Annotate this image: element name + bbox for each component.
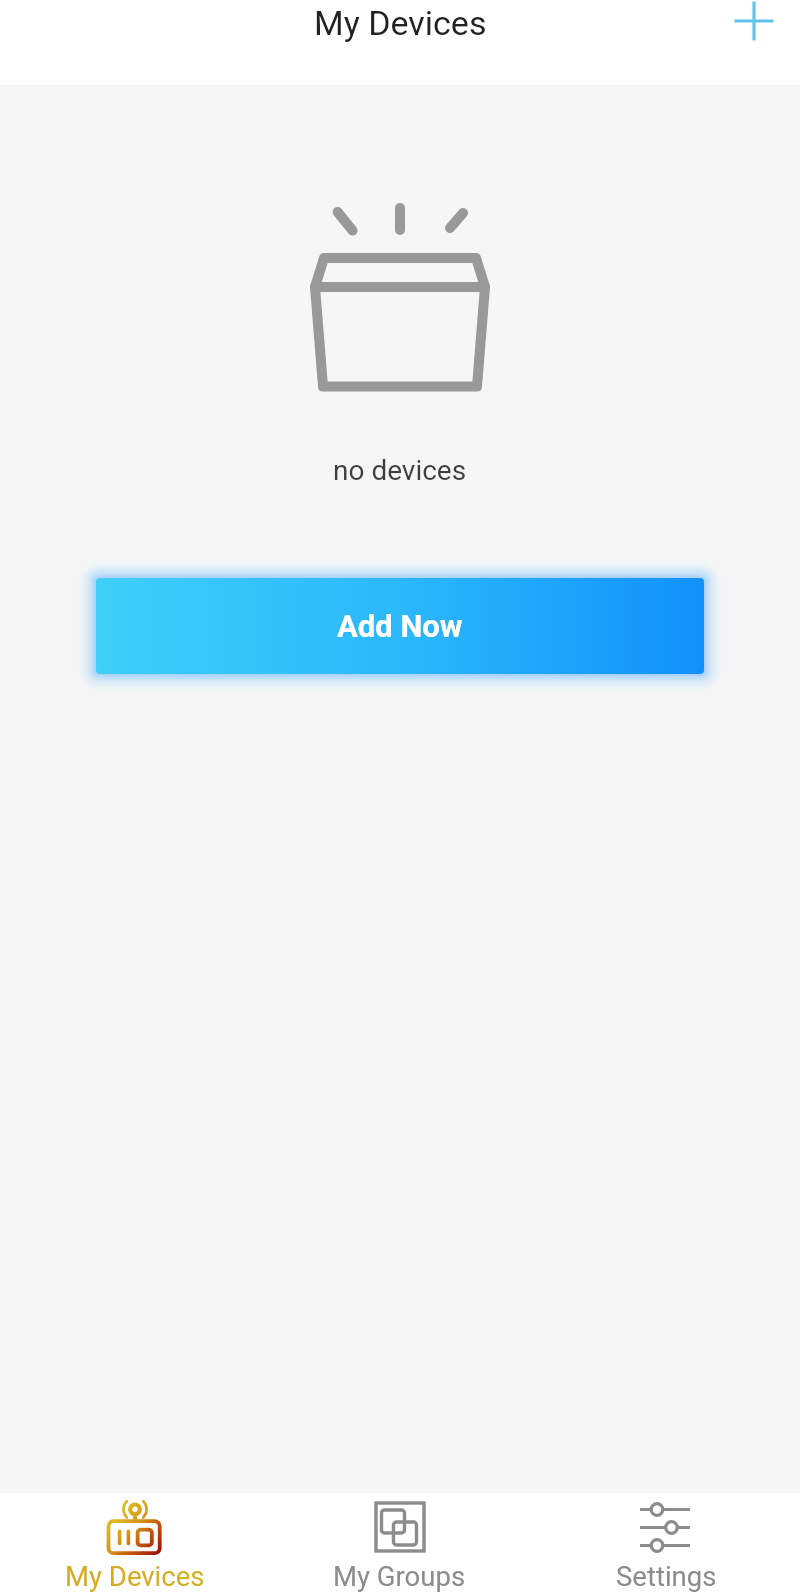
button[interactable]: Add device xyxy=(718,0,790,64)
button[interactable]: My Devices xyxy=(0,1493,266,1595)
button[interactable]: Add Now xyxy=(96,578,704,674)
staticText: My Groups xyxy=(333,1560,466,1592)
staticText: My Devices xyxy=(314,3,487,43)
button[interactable]: Settings xyxy=(533,1493,800,1595)
staticText: Add Now xyxy=(337,608,463,644)
staticText: no devices xyxy=(333,454,467,487)
staticText: My Devices xyxy=(65,1560,205,1592)
staticText: Settings xyxy=(616,1560,717,1592)
button[interactable]: My Groups xyxy=(266,1493,533,1595)
